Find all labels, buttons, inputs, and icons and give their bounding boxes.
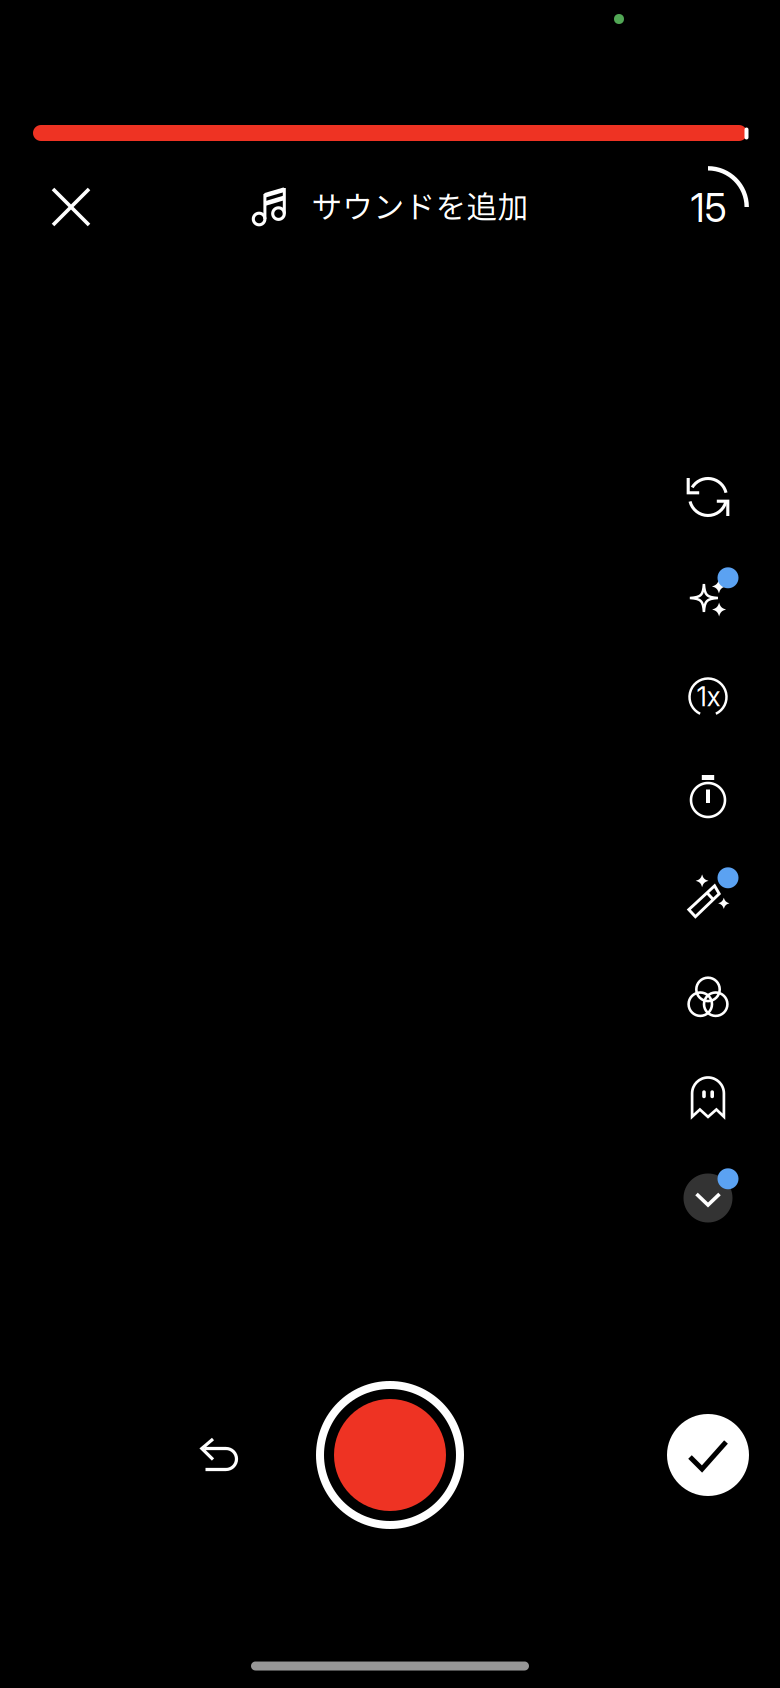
staticText: 1x	[696, 680, 720, 713]
button[interactable]: Done	[667, 1414, 749, 1496]
staticText: サウンドを追加	[311, 183, 528, 227]
button[interactable]: Recording length 15 seconds	[658, 157, 758, 257]
button[interactable]: More options	[672, 1162, 744, 1234]
staticText: 15	[690, 185, 726, 231]
button[interactable]: Undo last clip	[176, 1412, 262, 1498]
button[interactable]: Green screen	[672, 1061, 744, 1133]
button[interactable]: サウンドを追加	[251, 167, 528, 243]
button[interactable]: Effects	[672, 561, 744, 633]
button[interactable]: Playback speed	[672, 661, 744, 733]
button[interactable]: Timer	[672, 761, 744, 833]
button[interactable]: Close	[33, 169, 109, 245]
button[interactable]: Flip camera	[672, 461, 744, 533]
button[interactable]: Record	[315, 1380, 465, 1530]
button[interactable]: Filters	[672, 961, 744, 1033]
button[interactable]: Enhance	[672, 861, 744, 933]
